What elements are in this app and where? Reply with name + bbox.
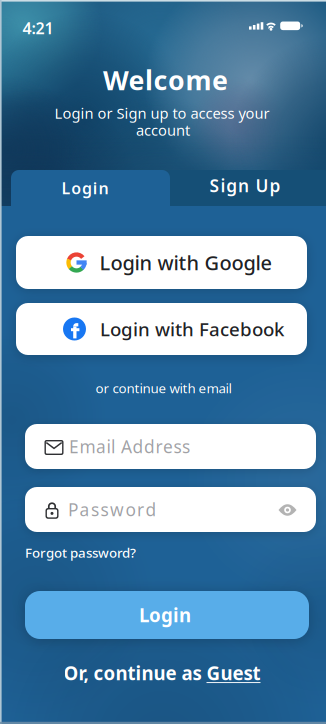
button[interactable]: Sign Up <box>164 170 326 214</box>
staticText: Login or Sign up to access your <box>54 103 269 123</box>
staticText: Login with Facebook <box>100 317 284 341</box>
staticText: Login <box>61 177 109 199</box>
staticText: or continue with email <box>95 379 231 397</box>
staticText: Login with Google <box>99 249 271 276</box>
staticText: 4:21 <box>22 17 53 39</box>
staticText: account <box>136 120 190 140</box>
button[interactable]: Login with Google <box>16 236 307 289</box>
staticText: Sign Up <box>210 174 280 197</box>
button[interactable]: Forgot password? <box>25 544 165 561</box>
button[interactable]: Login <box>11 170 170 214</box>
staticText: Password <box>68 498 156 521</box>
button[interactable]: Email Address <box>25 424 316 469</box>
staticText: Email Address <box>69 435 190 458</box>
button[interactable]: Login <box>25 591 309 639</box>
button[interactable]: Or, continue as Guest <box>63 661 260 685</box>
staticText: Welcome <box>103 62 228 98</box>
staticText: Login <box>139 603 191 627</box>
button[interactable]: Login with Facebook <box>16 303 307 355</box>
button[interactable]: Password <box>25 487 316 532</box>
staticText: Forgot password? <box>25 544 136 561</box>
staticText: Or, continue as Guest <box>63 661 260 685</box>
